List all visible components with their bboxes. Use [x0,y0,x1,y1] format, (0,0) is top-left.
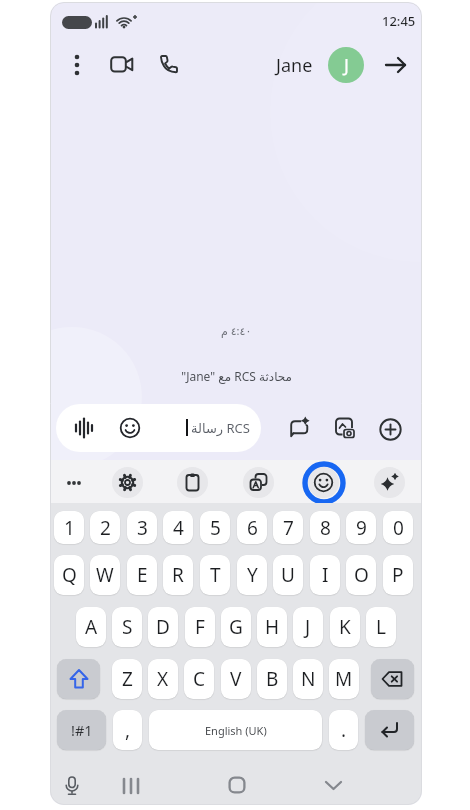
button[interactable] [117,776,145,796]
staticText: K [339,614,351,640]
button[interactable]: I [310,555,340,595]
button[interactable] [333,416,358,442]
button[interactable]: . [329,710,358,750]
button[interactable] [56,404,261,452]
button[interactable] [365,710,414,750]
button[interactable]: C [184,659,214,699]
button[interactable]: 6 [237,511,267,544]
button[interactable] [62,469,90,497]
button[interactable] [110,54,135,75]
staticText: H [265,614,280,640]
button[interactable]: E [127,555,157,595]
button[interactable]: F [185,607,215,647]
button[interactable]: G [221,607,251,647]
staticText: T [210,562,221,588]
button[interactable] [384,54,408,76]
button[interactable]: X [148,659,178,699]
staticText: 0 [393,515,404,541]
button[interactable]: K [330,607,360,647]
staticText: C [193,666,206,692]
button[interactable]: R [163,555,193,595]
button[interactable] [158,53,181,76]
button[interactable] [378,417,403,442]
staticText: X [157,666,169,692]
button[interactable]: J [293,607,323,647]
button[interactable]: V [221,659,251,699]
staticText: M [335,666,353,692]
staticText: ٤:٤٠ م [221,323,252,338]
staticText: P [392,562,404,588]
button[interactable] [119,417,141,439]
staticText: V [230,666,242,692]
button[interactable] [308,467,339,498]
button[interactable] [72,414,96,442]
staticText: S [122,614,133,640]
button[interactable]: J [328,47,364,83]
button[interactable]: 9 [346,511,376,544]
button[interactable] [177,467,208,498]
button[interactable] [243,467,274,498]
button[interactable]: Z [112,659,142,699]
staticText: Jane [276,53,313,78]
button[interactable]: Y [237,555,267,595]
button[interactable]: U [273,555,303,595]
staticText: English (UK) [205,723,267,738]
staticText: R [172,562,184,588]
button[interactable] [322,778,345,793]
button[interactable]: L [366,607,396,647]
button[interactable]: H [257,607,287,647]
staticText: 9 [356,515,367,541]
button[interactable]: N [293,659,323,699]
button[interactable]: P [383,555,413,595]
button[interactable]: 4 [163,511,193,544]
button[interactable]: Jane [230,52,313,78]
button[interactable]: 0 [383,511,413,544]
button[interactable]: A [76,607,106,647]
staticText: Z [122,666,133,692]
button[interactable]: 2 [90,511,120,544]
button[interactable]: W [90,555,120,595]
button[interactable]: S [112,607,142,647]
button[interactable]: B [257,659,287,699]
staticText: 4 [173,515,184,541]
button[interactable]: !#1 [57,710,106,750]
button[interactable]: 8 [310,511,340,544]
staticText: 3 [137,515,148,541]
staticText: 8 [320,515,331,541]
staticText: محادثة RCS مع "Jane" [181,368,292,384]
staticText: 6 [247,515,258,541]
button[interactable] [228,776,246,794]
staticText: . [341,717,347,743]
button[interactable]: Q [54,555,84,595]
button[interactable] [62,775,82,797]
staticText: , [125,717,131,743]
staticText: رسالة RCS [191,419,250,437]
staticText: O [354,562,369,588]
button[interactable]: English (UK) [149,710,322,750]
staticText: Y [247,562,258,588]
button[interactable] [57,659,100,699]
button[interactable] [371,659,414,699]
staticText: 7 [283,515,294,541]
button[interactable] [374,467,405,498]
staticText: I [322,562,329,588]
button[interactable] [112,467,143,498]
button[interactable]: , [113,710,142,750]
button[interactable]: T [200,555,230,595]
button[interactable]: O [346,555,376,595]
staticText: 1 [64,515,75,541]
button[interactable] [66,52,88,78]
staticText: U [281,562,295,588]
staticText: B [266,666,279,692]
button[interactable]: 1 [54,511,84,544]
staticText: G [229,614,243,640]
button[interactable]: D [148,607,178,647]
staticText: W [96,562,114,588]
button[interactable]: 5 [200,511,230,544]
button[interactable] [288,416,313,441]
button[interactable]: 7 [273,511,303,544]
button[interactable]: 3 [127,511,157,544]
staticText: N [301,666,316,692]
button[interactable]: M [329,659,359,699]
staticText: E [137,562,148,588]
